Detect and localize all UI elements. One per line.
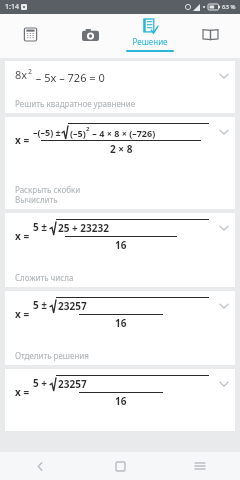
button[interactable]: x = [5, 369, 235, 431]
button[interactable]: x = [5, 291, 235, 365]
staticText: 16 [115, 316, 127, 330]
button[interactable]: Back [0, 452, 80, 480]
staticText: 1:14 [5, 2, 19, 12]
staticText: x = [15, 229, 30, 243]
button[interactable]: Calculator [0, 14, 60, 58]
button[interactable]: Textbook [180, 14, 240, 58]
staticText: 5 ± [33, 298, 48, 312]
button[interactable]: x = [5, 117, 235, 209]
button[interactable]: Camera [60, 14, 120, 58]
staticText: Раскрыть скобки Вычислить [15, 184, 81, 205]
staticText: 8x [15, 67, 28, 82]
staticText: 2 [86, 125, 90, 133]
button[interactable]: x = [5, 213, 235, 287]
button[interactable]: Home [80, 452, 160, 480]
staticText: – 4 × 8 × (–726) [90, 127, 156, 139]
button[interactable]: 8x [5, 61, 235, 113]
staticText: x = [15, 307, 30, 321]
button[interactable]: Решение [120, 14, 180, 58]
staticText: 5 + [33, 376, 48, 390]
staticText: (–5) [70, 127, 86, 139]
button[interactable]: Expand step [219, 379, 229, 389]
button[interactable]: Expand step [219, 223, 229, 233]
button[interactable]: Expand step [219, 301, 229, 311]
staticText: 23257 [58, 299, 87, 313]
staticText: 2 × 8 [110, 142, 133, 156]
staticText: 2 [28, 67, 33, 77]
button[interactable]: Expand step [219, 71, 229, 81]
staticText: 5 ± [33, 220, 48, 234]
staticText: – 5x – 726 = 0 [33, 70, 105, 85]
staticText: Отделить решения [15, 350, 89, 361]
button[interactable]: Expand step [219, 127, 229, 137]
staticText: x = [15, 385, 30, 399]
staticText: x = [15, 133, 30, 147]
staticText: 16 [115, 394, 127, 408]
staticText: Решение [132, 36, 168, 47]
staticText: 16 [115, 238, 127, 252]
staticText: –(–5) ± [33, 126, 61, 138]
staticText: Решить квадратное уравнение [15, 98, 136, 109]
staticText: 23257 [58, 377, 87, 391]
staticText: Сложить числа [15, 272, 74, 283]
staticText: 63 % [222, 3, 236, 11]
staticText: 25 + 23232 [58, 221, 109, 235]
button[interactable]: Recents [160, 452, 240, 480]
